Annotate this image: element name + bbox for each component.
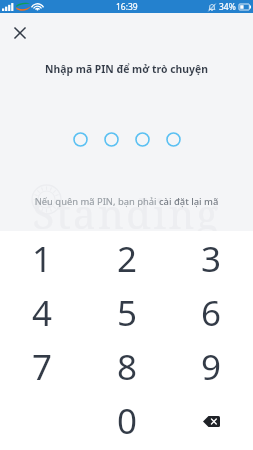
button[interactable]: PIN digit — [135, 132, 150, 147]
staticText: Nếu quên mã PIN, bạn phải cài đặt lại mã — [0, 195, 253, 208]
staticText: 8 — [117, 343, 138, 391]
staticText: 16:39 — [116, 1, 138, 13]
staticText: 0 — [117, 397, 138, 445]
other: Backspace — [203, 416, 220, 427]
button[interactable]: 4 — [0, 286, 85, 340]
staticText: Nhập mã PIN để mở trò chuyện — [0, 62, 253, 76]
staticText: 1 — [32, 235, 53, 283]
staticText: 5 — [117, 289, 138, 337]
staticText: Standing — [26, 186, 227, 240]
button[interactable]: 3 — [169, 231, 253, 286]
button[interactable]: 7 — [0, 340, 85, 394]
button[interactable]: Backspace — [169, 394, 253, 448]
staticText: 2 — [117, 235, 138, 283]
button[interactable]: PIN digit — [73, 132, 88, 147]
button[interactable]: Nếu quên mã PIN, bạn phải cài đặt lại mã — [0, 192, 253, 210]
staticText: 6 — [201, 289, 222, 337]
button[interactable]: 8 — [85, 340, 169, 394]
button[interactable]: 2 — [85, 231, 169, 286]
button[interactable]: Close — [9, 22, 31, 44]
staticText: 9 — [201, 343, 222, 391]
button[interactable]: 0 — [85, 394, 169, 448]
button[interactable]: 5 — [85, 286, 169, 340]
staticText: 3 — [201, 235, 222, 283]
button[interactable]: 9 — [169, 340, 253, 394]
button[interactable]: PIN digit — [166, 132, 181, 147]
staticText: 7 — [32, 343, 53, 391]
button[interactable]: PIN digit — [104, 132, 119, 147]
staticText: 34% — [219, 1, 236, 13]
button[interactable]: 1 — [0, 231, 85, 286]
staticText: 4 — [32, 289, 53, 337]
button[interactable]: 6 — [169, 286, 253, 340]
